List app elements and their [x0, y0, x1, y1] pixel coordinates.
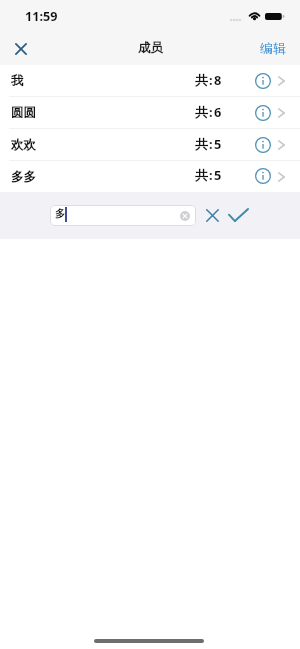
staticText: 共:5: [195, 135, 223, 152]
button[interactable]: Info: [252, 102, 273, 123]
staticText: 多: [55, 207, 66, 220]
staticText: 圆圆: [11, 105, 36, 121]
button[interactable]: 我: [0, 65, 300, 97]
staticText: 我: [11, 73, 24, 89]
staticText: 共:5: [195, 166, 223, 183]
staticText: 11:59: [25, 8, 58, 25]
button[interactable]: 多多: [0, 161, 300, 192]
staticText: 成员: [138, 40, 163, 56]
button[interactable]: 多: [50, 205, 196, 226]
button[interactable]: Close: [9, 37, 33, 61]
button[interactable]: Cancel: [202, 205, 223, 226]
staticText: 共:6: [195, 103, 223, 120]
button[interactable]: Info: [252, 134, 273, 155]
button[interactable]: 编辑: [257, 35, 289, 61]
staticText: 编辑: [260, 40, 286, 56]
button[interactable]: Info: [252, 165, 273, 186]
button[interactable]: Info: [252, 70, 273, 91]
button[interactable]: Clear text: [178, 209, 192, 223]
staticText: 多多: [11, 169, 36, 185]
button[interactable]: 欢欢: [0, 129, 300, 161]
button[interactable]: 圆圆: [0, 97, 300, 129]
staticText: 欢欢: [11, 137, 36, 153]
button[interactable]: Confirm: [227, 204, 250, 226]
staticText: 共:8: [195, 71, 223, 88]
